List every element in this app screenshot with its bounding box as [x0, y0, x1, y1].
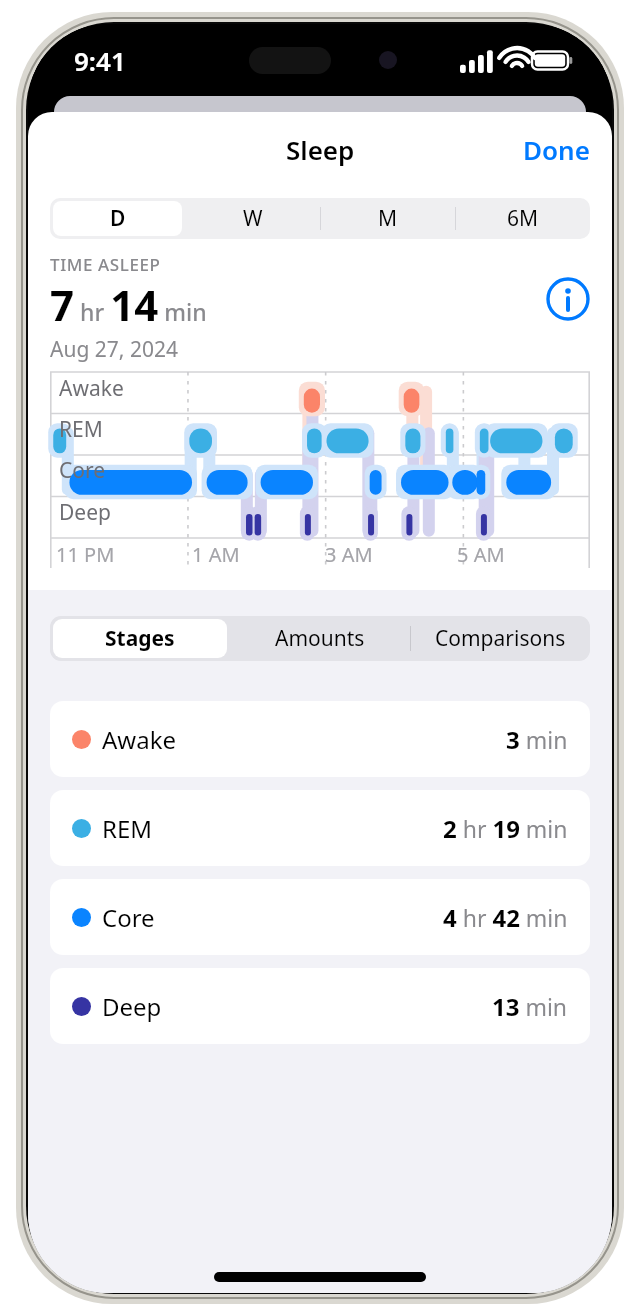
- staticText: Core: [102, 901, 155, 934]
- button[interactable]: W: [185, 198, 320, 239]
- staticText: 4 hr 42 min: [443, 901, 568, 934]
- staticText: 5 AM: [457, 541, 505, 568]
- staticText: 11 PM: [56, 541, 115, 568]
- staticText: REM: [102, 812, 153, 845]
- button[interactable]: Done: [501, 120, 612, 179]
- staticText: 7 hr 14 min: [50, 276, 207, 333]
- staticText: Awake: [102, 723, 177, 756]
- button[interactable]: Core: [50, 879, 590, 955]
- staticText: Core: [59, 456, 106, 485]
- staticText: Amounts: [275, 624, 365, 653]
- staticText: 9:41: [74, 43, 126, 78]
- staticText: D: [110, 204, 126, 233]
- staticText: 3 min: [506, 723, 568, 756]
- staticText: Done: [523, 132, 590, 167]
- staticText: Comparisons: [435, 624, 566, 653]
- button[interactable]: Deep: [50, 968, 590, 1044]
- button[interactable]: REM: [50, 790, 590, 866]
- staticText: 3 AM: [325, 541, 373, 568]
- staticText: 2 hr 19 min: [443, 812, 568, 845]
- staticText: M: [378, 204, 398, 233]
- button[interactable]: Stages: [50, 616, 230, 661]
- staticText: Deep: [102, 990, 162, 1023]
- staticText: 6M: [507, 204, 539, 233]
- staticText: 1 AM: [192, 541, 240, 568]
- button[interactable]: Comparisons: [410, 616, 590, 661]
- button[interactable]: M: [320, 198, 455, 239]
- button[interactable]: D: [50, 198, 185, 239]
- staticText: TIME ASLEEP: [50, 253, 161, 276]
- button[interactable]: Info: [546, 277, 590, 321]
- staticText: Awake: [59, 374, 124, 403]
- button[interactable]: Amounts: [230, 616, 410, 661]
- staticText: Deep: [59, 498, 111, 527]
- button[interactable]: Awake: [50, 701, 590, 777]
- staticText: Aug 27, 2024: [50, 335, 178, 364]
- button[interactable]: 6M: [455, 198, 590, 239]
- staticText: 13 min: [492, 990, 568, 1023]
- staticText: REM: [59, 415, 103, 444]
- staticText: Sleep: [286, 132, 355, 167]
- staticText: W: [243, 204, 263, 233]
- staticText: Stages: [105, 624, 175, 653]
